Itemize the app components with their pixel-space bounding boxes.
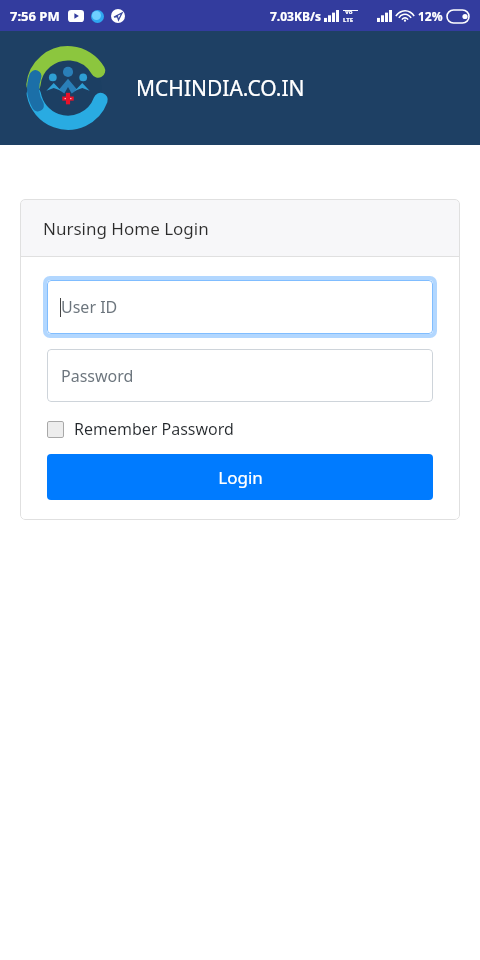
staticText: Login	[218, 466, 263, 489]
staticText: User ID	[61, 296, 118, 318]
staticText: Nursing Home Login	[43, 217, 209, 240]
button[interactable]: Remember Password	[47, 418, 234, 440]
button[interactable]: Password	[47, 349, 433, 402]
staticText: LTE	[343, 16, 354, 24]
staticText: Remember Password	[74, 418, 234, 440]
staticText: Vo	[345, 8, 353, 16]
staticText: 12%	[418, 8, 443, 24]
button[interactable]: Login	[47, 454, 433, 500]
staticText: Password	[61, 365, 134, 387]
button[interactable]: User ID	[47, 280, 433, 334]
staticText: MCHINDIA.CO.IN	[136, 74, 305, 103]
staticText: 7:56 PM	[10, 7, 60, 25]
staticText: 7.03KB/s	[270, 8, 321, 24]
